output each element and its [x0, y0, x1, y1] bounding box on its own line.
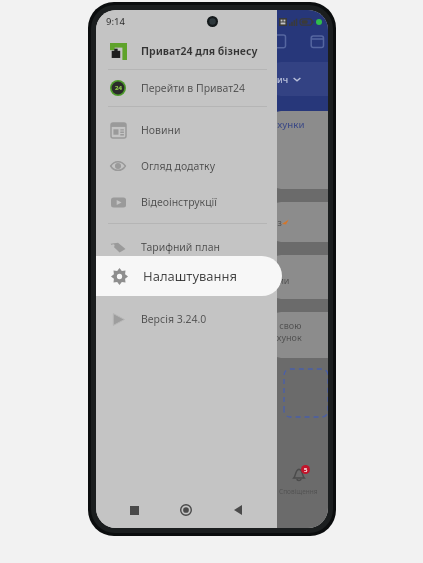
button[interactable]: Огляд додатку [96, 148, 277, 184]
staticText: Налаштування [141, 276, 217, 290]
staticText: еми [272, 274, 290, 286]
button[interactable]: 24 [96, 70, 277, 106]
staticText: Тарифний план [141, 240, 220, 254]
button[interactable]: Відеоінструкції [96, 184, 277, 220]
staticText: Перейти в Приват24 [141, 81, 246, 95]
staticText: Версія 3.24.0 [141, 312, 207, 326]
staticText: ахунок [272, 331, 302, 343]
button[interactable]: Сповіщення [290, 466, 308, 484]
button[interactable]: Новини [96, 112, 277, 148]
button[interactable]: Recents [123, 499, 146, 522]
staticText: Новини [141, 123, 181, 137]
staticText: 24 [115, 84, 122, 92]
button[interactable]: Back [226, 498, 250, 522]
button[interactable]: Версія 3.24.0 [96, 301, 277, 337]
staticText: Відеоінструкції [141, 195, 217, 209]
staticText: вич [272, 73, 288, 85]
button[interactable]: Тарифний план [96, 229, 277, 265]
staticText: а [272, 262, 278, 274]
staticText: Налаштування [143, 267, 238, 285]
staticText: Огляд додатку [141, 159, 216, 173]
staticText: ахунки [272, 118, 305, 131]
staticText: 9:14 [106, 15, 125, 28]
staticText: 5 [304, 466, 308, 474]
button[interactable]: Налаштування [96, 265, 277, 301]
staticText: Приват24 для бізнесу [141, 44, 258, 58]
staticText: из [272, 216, 282, 228]
staticText: а свою [272, 319, 302, 331]
button[interactable]: Налаштування [96, 256, 282, 296]
staticText: Сповіщення [279, 487, 318, 496]
button[interactable]: Home [173, 497, 199, 523]
button[interactable]: Приват24 для бізнесу [96, 33, 277, 69]
